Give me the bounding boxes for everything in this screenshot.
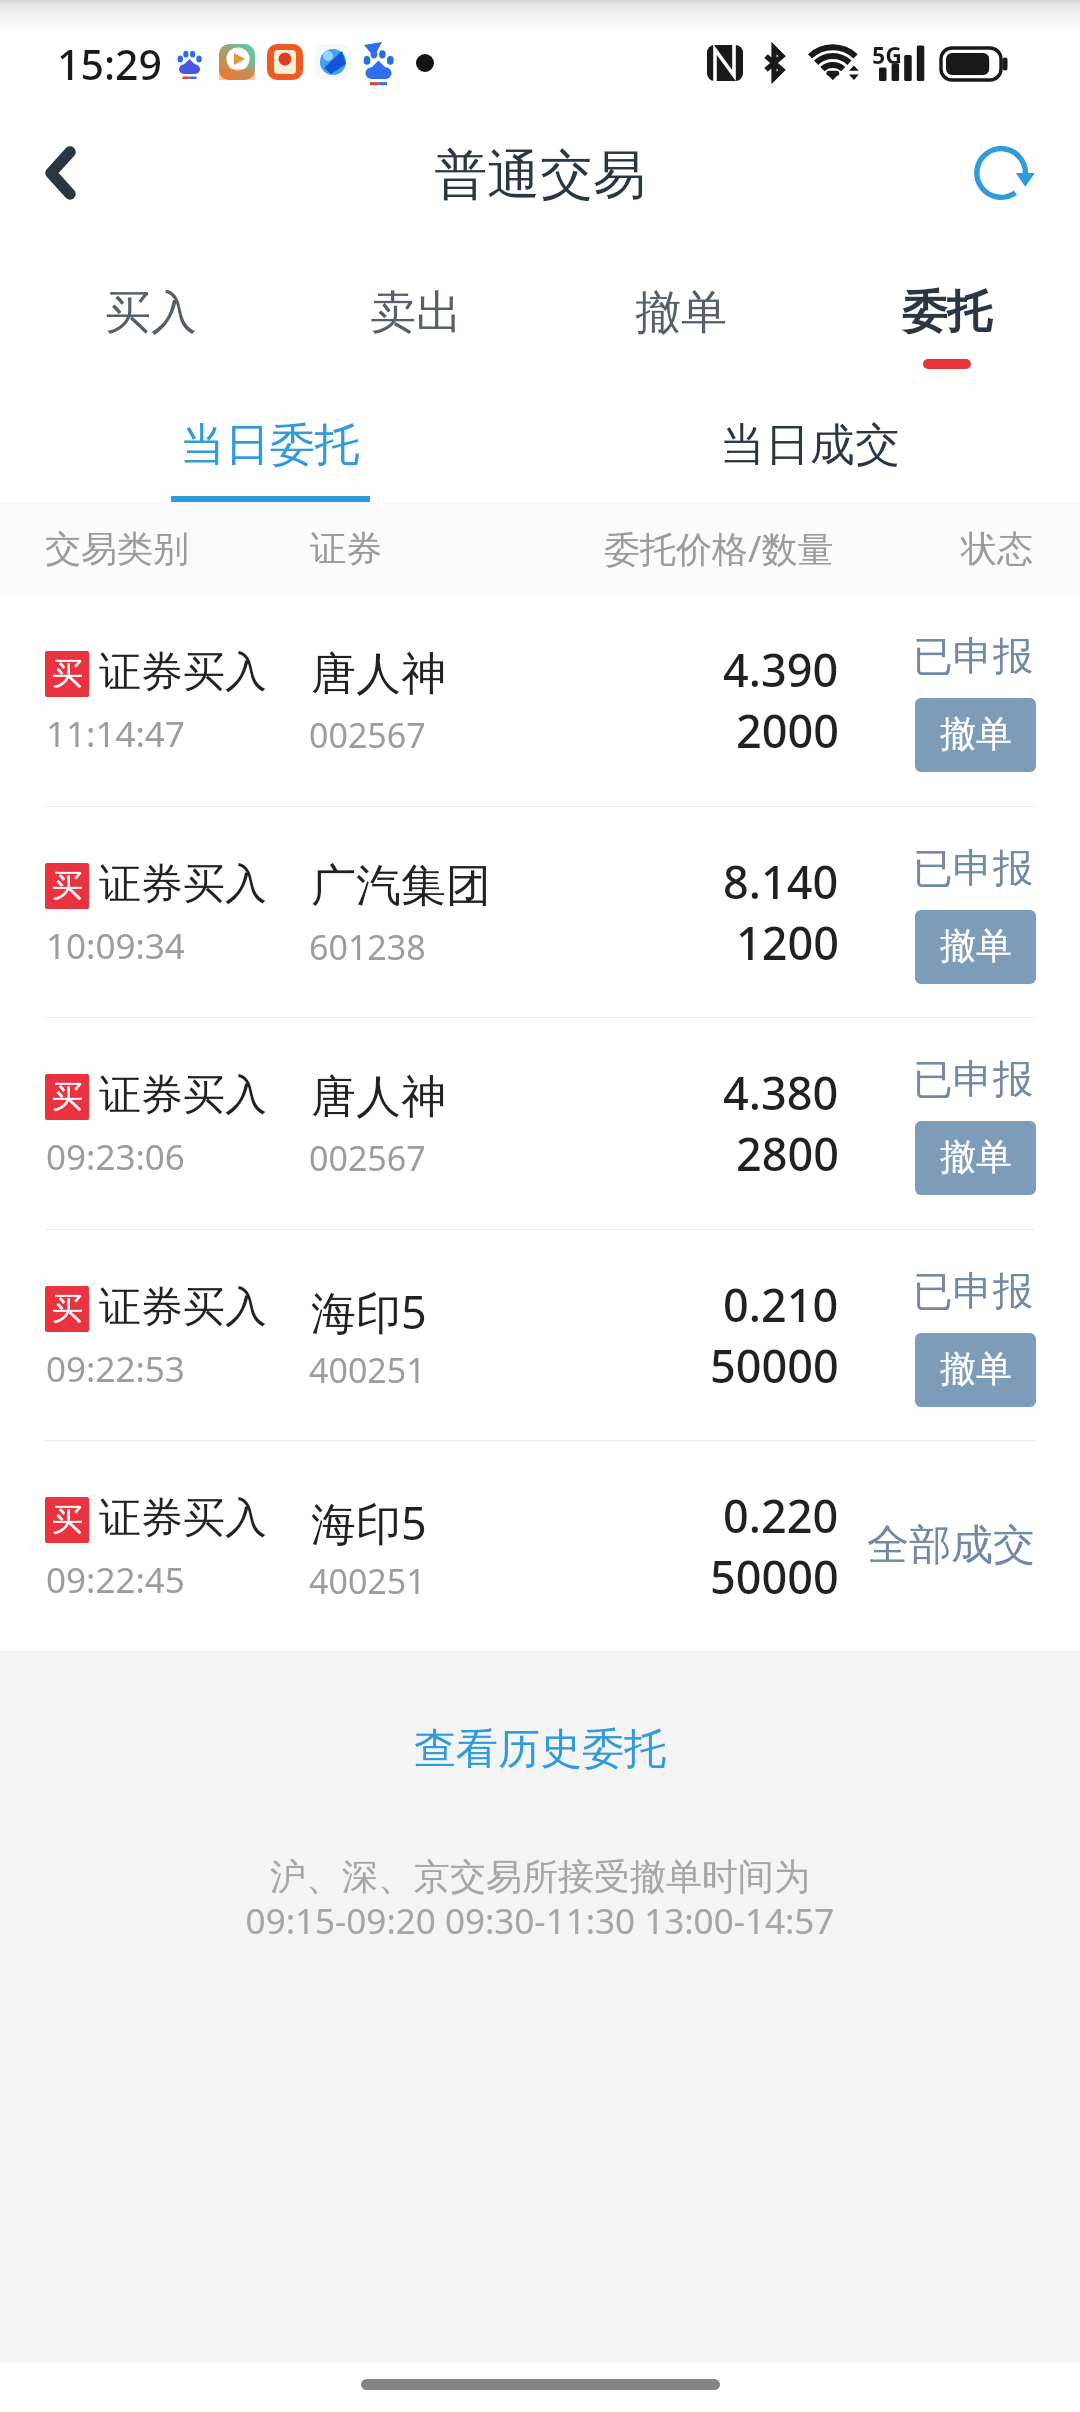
button[interactable]: 撤单 (548, 250, 814, 380)
staticText: 交易类别 (45, 526, 189, 571)
staticText: 状态 (961, 526, 1033, 571)
staticText: 2800 (736, 1123, 839, 1184)
button[interactable]: 当日委托 (0, 380, 540, 502)
staticText: 50000 (710, 1335, 839, 1396)
button[interactable]: 查看历史委托 (390, 1712, 690, 1792)
staticText: 09:22:53 (46, 1345, 185, 1393)
staticText: 5G (872, 39, 902, 70)
staticText: 002567 (309, 1135, 426, 1181)
staticText: 撤单 (940, 1346, 1012, 1391)
staticText: 已申报 (913, 843, 1033, 893)
staticText: 已申报 (913, 1054, 1033, 1104)
button[interactable]: 当日成交 (540, 380, 1080, 502)
staticText: 查看历史委托 (414, 1723, 666, 1776)
staticText: 证券买入 (99, 1069, 267, 1122)
staticText: 证券买入 (99, 646, 267, 699)
staticText: 撤单 (635, 284, 727, 342)
staticText: 唐人神 (311, 646, 446, 703)
staticText: 卖出 (370, 284, 462, 342)
button[interactable]: Back (0, 110, 120, 250)
staticText: 15:29 (57, 36, 162, 92)
staticText: 买入 (105, 284, 197, 342)
staticText: 09:15-09:20 09:30-11:30 13:00-14:57 (0, 1897, 1080, 1945)
staticText: 买 (52, 1077, 83, 1116)
staticText: 当日成交 (720, 417, 900, 474)
button[interactable]: 撤单 (915, 910, 1036, 984)
staticText: 撤单 (940, 711, 1012, 756)
staticText: 400251 (309, 1347, 426, 1393)
staticText: 已申报 (913, 631, 1033, 681)
staticText: 买 (52, 866, 83, 905)
staticText: 买 (52, 1289, 83, 1328)
staticText: 证券买入 (99, 1281, 267, 1334)
staticText: 买 (52, 654, 83, 693)
staticText: 普通交易 (434, 142, 646, 209)
button[interactable]: 撤单 (915, 1121, 1036, 1195)
button[interactable]: 卖出 (283, 250, 548, 380)
staticText: 002567 (309, 712, 426, 758)
staticText: 沪、深、京交易所接受撤单时间为 (0, 1854, 1080, 1899)
button[interactable]: 买 (0, 1230, 1080, 1440)
button[interactable]: Refresh (970, 110, 1080, 250)
staticText: 4.380 (723, 1062, 839, 1123)
staticText: 委托价格/数量 (604, 524, 834, 573)
staticText: 广汽集团 (311, 858, 491, 915)
staticText: 09:22:45 (46, 1556, 185, 1604)
staticText: 11:14:47 (46, 710, 185, 758)
staticText: 50000 (710, 1546, 839, 1607)
staticText: 全部成交 (867, 1519, 1035, 1572)
staticText: 0.220 (723, 1485, 839, 1546)
staticText: 400251 (309, 1558, 426, 1604)
staticText: 当日委托 (180, 417, 360, 474)
staticText: 证券买入 (99, 1492, 267, 1545)
staticText: 09:23:06 (46, 1133, 185, 1181)
staticText: 2000 (736, 700, 839, 761)
staticText: 海印5 (311, 1492, 427, 1553)
staticText: 撤单 (940, 1134, 1012, 1179)
staticText: 8.140 (723, 851, 839, 912)
button[interactable]: 买 (0, 1441, 1080, 1650)
staticText: 10:09:34 (46, 922, 185, 970)
staticText: 买 (52, 1500, 83, 1539)
button[interactable]: 撤单 (915, 1333, 1036, 1407)
staticText: 撤单 (940, 923, 1012, 968)
staticText: 唐人神 (311, 1069, 446, 1126)
staticText: 证券买入 (99, 858, 267, 911)
button[interactable]: 撤单 (915, 698, 1036, 772)
button[interactable]: 买 (0, 807, 1080, 1017)
staticText: 海印5 (311, 1281, 427, 1342)
button[interactable]: 委托 (814, 250, 1080, 380)
staticText: 4.390 (723, 639, 839, 700)
button[interactable]: 买 (0, 1018, 1080, 1229)
staticText: 证券 (310, 526, 382, 571)
staticText: 1200 (736, 912, 839, 973)
staticText: 0.210 (723, 1274, 839, 1335)
staticText: 已申报 (913, 1266, 1033, 1316)
button[interactable]: 买入 (18, 250, 283, 380)
button[interactable]: 买 (0, 595, 1080, 806)
staticText: 委托 (902, 284, 992, 341)
staticText: 601238 (309, 924, 426, 970)
